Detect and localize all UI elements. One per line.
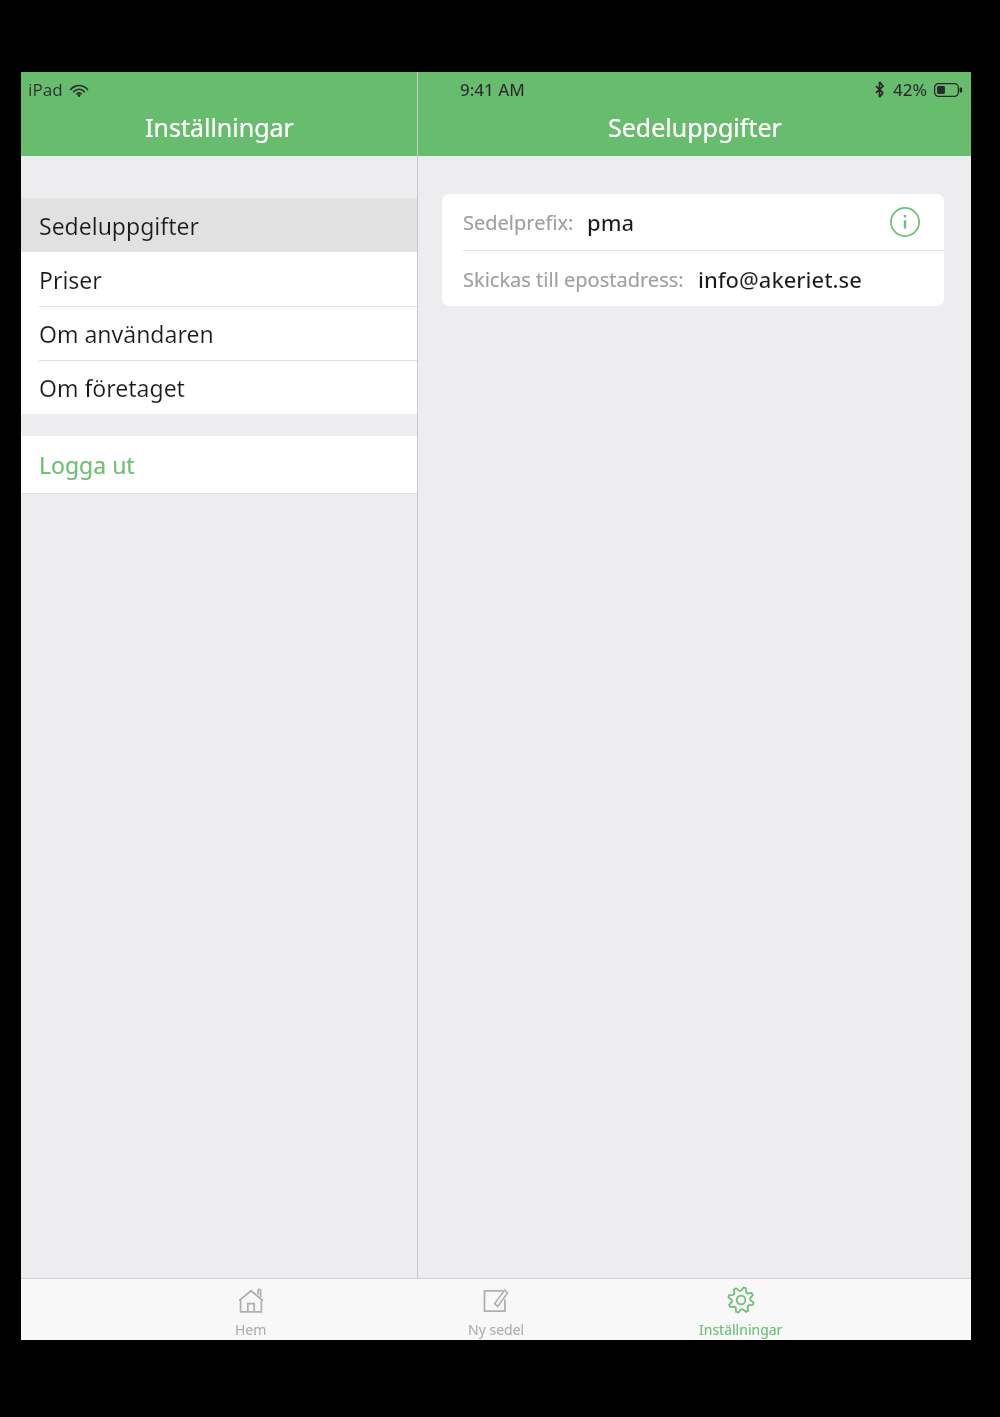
staticText: info@akeriet.se [698, 264, 862, 294]
button[interactable]: Information [889, 206, 921, 238]
staticText: Skickas till epostadress: [463, 266, 684, 293]
staticText: Priser [39, 264, 102, 295]
staticText: Om användaren [39, 318, 214, 349]
button[interactable]: Priser [21, 252, 417, 306]
staticText: Inställningar [699, 1320, 783, 1339]
button[interactable]: Logga ut [21, 436, 417, 493]
staticText: iPad [28, 78, 63, 101]
staticText: Om företaget [39, 372, 185, 403]
staticText: Logga ut [39, 449, 135, 480]
staticText: 42% [893, 78, 927, 101]
staticText: pma [587, 207, 635, 237]
button[interactable]: Hem [176, 1279, 326, 1340]
staticText: Ny sedel [468, 1320, 525, 1339]
button[interactable]: Om användaren [21, 306, 417, 360]
staticText: Hem [235, 1320, 267, 1339]
button[interactable]: Ny sedel [421, 1279, 571, 1340]
staticText: Inställningar [145, 110, 294, 144]
button[interactable]: Inställningar [666, 1279, 816, 1340]
staticText: Sedeluppgifter [608, 110, 782, 144]
button[interactable]: Sedeluppgifter [21, 198, 417, 252]
button[interactable]: Sedelprefix: [442, 194, 944, 250]
staticText: Sedeluppgifter [39, 210, 199, 241]
button[interactable]: Om företaget [21, 360, 417, 414]
staticText: 9:41 AM [460, 78, 525, 101]
button[interactable]: Skickas till epostadress: [442, 251, 944, 306]
staticText: Sedelprefix: [463, 209, 574, 236]
